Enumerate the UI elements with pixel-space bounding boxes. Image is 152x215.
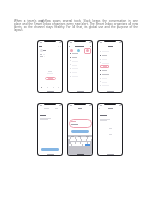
- button[interactable]: [68, 56, 92, 60]
- button[interactable]: Tab 2: [46, 86, 49, 89]
- button[interactable]: Tab 4: [57, 86, 60, 89]
- button[interactable]: [68, 75, 92, 79]
- button[interactable]: [98, 50, 122, 54]
- button[interactable]: [68, 71, 92, 75]
- staticText: When a team's workflow spans several too…: [14, 19, 138, 32]
- button[interactable]: [98, 73, 122, 77]
- button[interactable]: [68, 63, 92, 67]
- button[interactable]: Tab 3: [52, 86, 55, 89]
- button[interactable]: [98, 80, 122, 84]
- button[interactable]: Person: [68, 48, 75, 54]
- button[interactable]: [98, 54, 122, 58]
- button[interactable]: [68, 67, 92, 71]
- button[interactable]: [69, 119, 92, 128]
- button[interactable]: [68, 59, 92, 63]
- button[interactable]: Tab 1: [40, 86, 43, 89]
- button[interactable]: [41, 148, 59, 151]
- button[interactable]: Person: [75, 48, 82, 54]
- button[interactable]: [98, 77, 122, 81]
- button[interactable]: [98, 62, 122, 66]
- button[interactable]: [98, 84, 122, 88]
- button[interactable]: Person selected: [84, 48, 91, 54]
- button[interactable]: [100, 65, 109, 68]
- button[interactable]: [45, 77, 56, 80]
- button[interactable]: [98, 69, 122, 73]
- button[interactable]: [68, 52, 92, 56]
- button[interactable]: [71, 130, 89, 133]
- button[interactable]: [98, 58, 122, 62]
